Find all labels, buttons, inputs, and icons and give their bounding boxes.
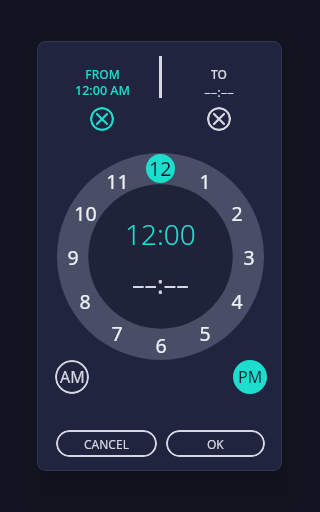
button[interactable]: 1	[191, 167, 219, 195]
button[interactable]: 8	[71, 287, 99, 315]
button[interactable]: PM	[233, 360, 267, 394]
button[interactable]: 4	[223, 287, 251, 315]
staticText: PM	[238, 366, 263, 388]
button[interactable]: 3	[235, 243, 263, 271]
staticText: 8	[79, 288, 91, 315]
staticText: 9	[67, 244, 79, 271]
staticText: 4	[231, 288, 243, 315]
staticText: FROM	[85, 66, 120, 82]
staticText: 12:00 AM	[75, 82, 130, 99]
staticText: 5	[199, 320, 211, 347]
button[interactable]: 11	[103, 167, 131, 195]
button[interactable]: 5	[191, 319, 219, 347]
staticText: ––:––	[132, 267, 189, 301]
staticText: 3	[243, 244, 255, 271]
staticText: 1	[199, 168, 211, 195]
button[interactable]: 9	[59, 243, 87, 271]
staticText: 6	[155, 332, 167, 359]
staticText: 12	[149, 155, 172, 182]
button[interactable]: FROM	[48, 61, 156, 101]
staticText: TO	[211, 66, 227, 82]
staticText: 10	[74, 200, 97, 227]
button[interactable]: 7	[103, 319, 131, 347]
staticText: AM	[60, 366, 85, 388]
button[interactable]: 10	[71, 199, 99, 227]
button[interactable]: Clear time	[207, 107, 231, 131]
staticText: 11	[106, 168, 129, 195]
button[interactable]: 2	[223, 199, 251, 227]
button[interactable]: 6	[147, 331, 175, 359]
button[interactable]: AM	[55, 360, 89, 394]
button[interactable]: TO	[165, 61, 273, 101]
staticText: 12:00	[125, 215, 196, 253]
button[interactable]: OK	[166, 430, 265, 457]
staticText: CANCEL	[84, 436, 129, 452]
staticText: 7	[111, 320, 123, 347]
button[interactable]: Clear time	[90, 107, 114, 131]
staticText: ––:––	[204, 83, 234, 101]
button[interactable]: 12	[146, 154, 175, 183]
button[interactable]: CANCEL	[56, 430, 157, 457]
staticText: OK	[207, 436, 224, 452]
staticText: 2	[231, 200, 243, 227]
